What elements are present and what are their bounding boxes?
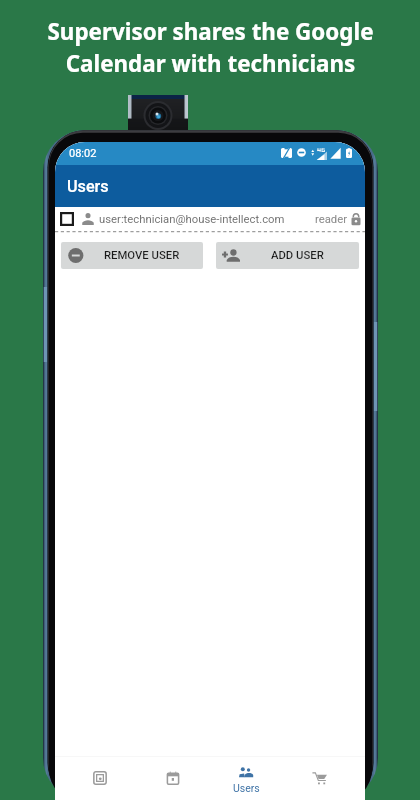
staticText: Users xyxy=(67,177,109,196)
staticText: 08:02 xyxy=(69,147,97,160)
staticText: user:technician@house-intellect.com xyxy=(99,213,285,226)
button[interactable]: Devices xyxy=(63,757,136,800)
button[interactable]: REMOVE USER xyxy=(61,242,203,269)
staticText: Users xyxy=(233,782,260,794)
staticText: REMOVE USER xyxy=(104,249,180,262)
staticText: Supervisor shares the Google Calendar wi… xyxy=(47,16,374,78)
staticText: ADD USER xyxy=(271,249,324,262)
staticText: reader xyxy=(315,213,348,226)
button[interactable]: ADD USER xyxy=(216,242,359,269)
button[interactable]: user:technician@house-intellect.com xyxy=(55,206,365,232)
button[interactable]: Users xyxy=(209,757,283,800)
button[interactable]: Cart xyxy=(283,757,357,800)
button[interactable]: Calendar xyxy=(136,757,209,800)
